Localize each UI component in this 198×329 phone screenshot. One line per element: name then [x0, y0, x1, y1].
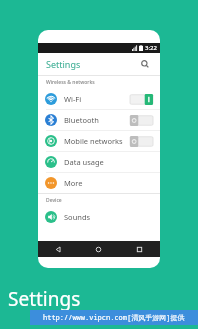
- button[interactable]: On: [130, 94, 153, 105]
- button[interactable]: Search: [138, 57, 152, 71]
- staticText: http://www.vipcn.com[清风手游网]提供: [43, 313, 185, 323]
- button[interactable]: Data usage: [38, 152, 160, 172]
- staticText: Sounds: [64, 212, 91, 222]
- button[interactable]: Off: [130, 115, 153, 126]
- staticText: Wi-Fi: [64, 94, 82, 104]
- button[interactable]: Mobile networks: [38, 131, 160, 151]
- staticText: Bluetooth: [64, 115, 99, 125]
- button[interactable]: Wi-Fi: [38, 89, 160, 109]
- staticText: 3:22: [145, 44, 157, 52]
- button[interactable]: Bluetooth: [38, 110, 160, 130]
- staticText: Data usage: [64, 157, 104, 167]
- button[interactable]: Back: [38, 241, 78, 257]
- staticText: More: [64, 178, 83, 188]
- staticText: Wireless & networks: [46, 79, 95, 86]
- button[interactable]: Recents: [119, 241, 160, 257]
- button[interactable]: Off: [130, 136, 153, 147]
- button[interactable]: Sounds: [38, 207, 160, 227]
- button[interactable]: Home: [78, 241, 119, 257]
- button[interactable]: More: [38, 173, 160, 193]
- staticText: Settings: [46, 58, 81, 70]
- staticText: Settings: [8, 286, 81, 312]
- staticText: Mobile networks: [64, 136, 123, 146]
- staticText: Device: [46, 197, 62, 204]
